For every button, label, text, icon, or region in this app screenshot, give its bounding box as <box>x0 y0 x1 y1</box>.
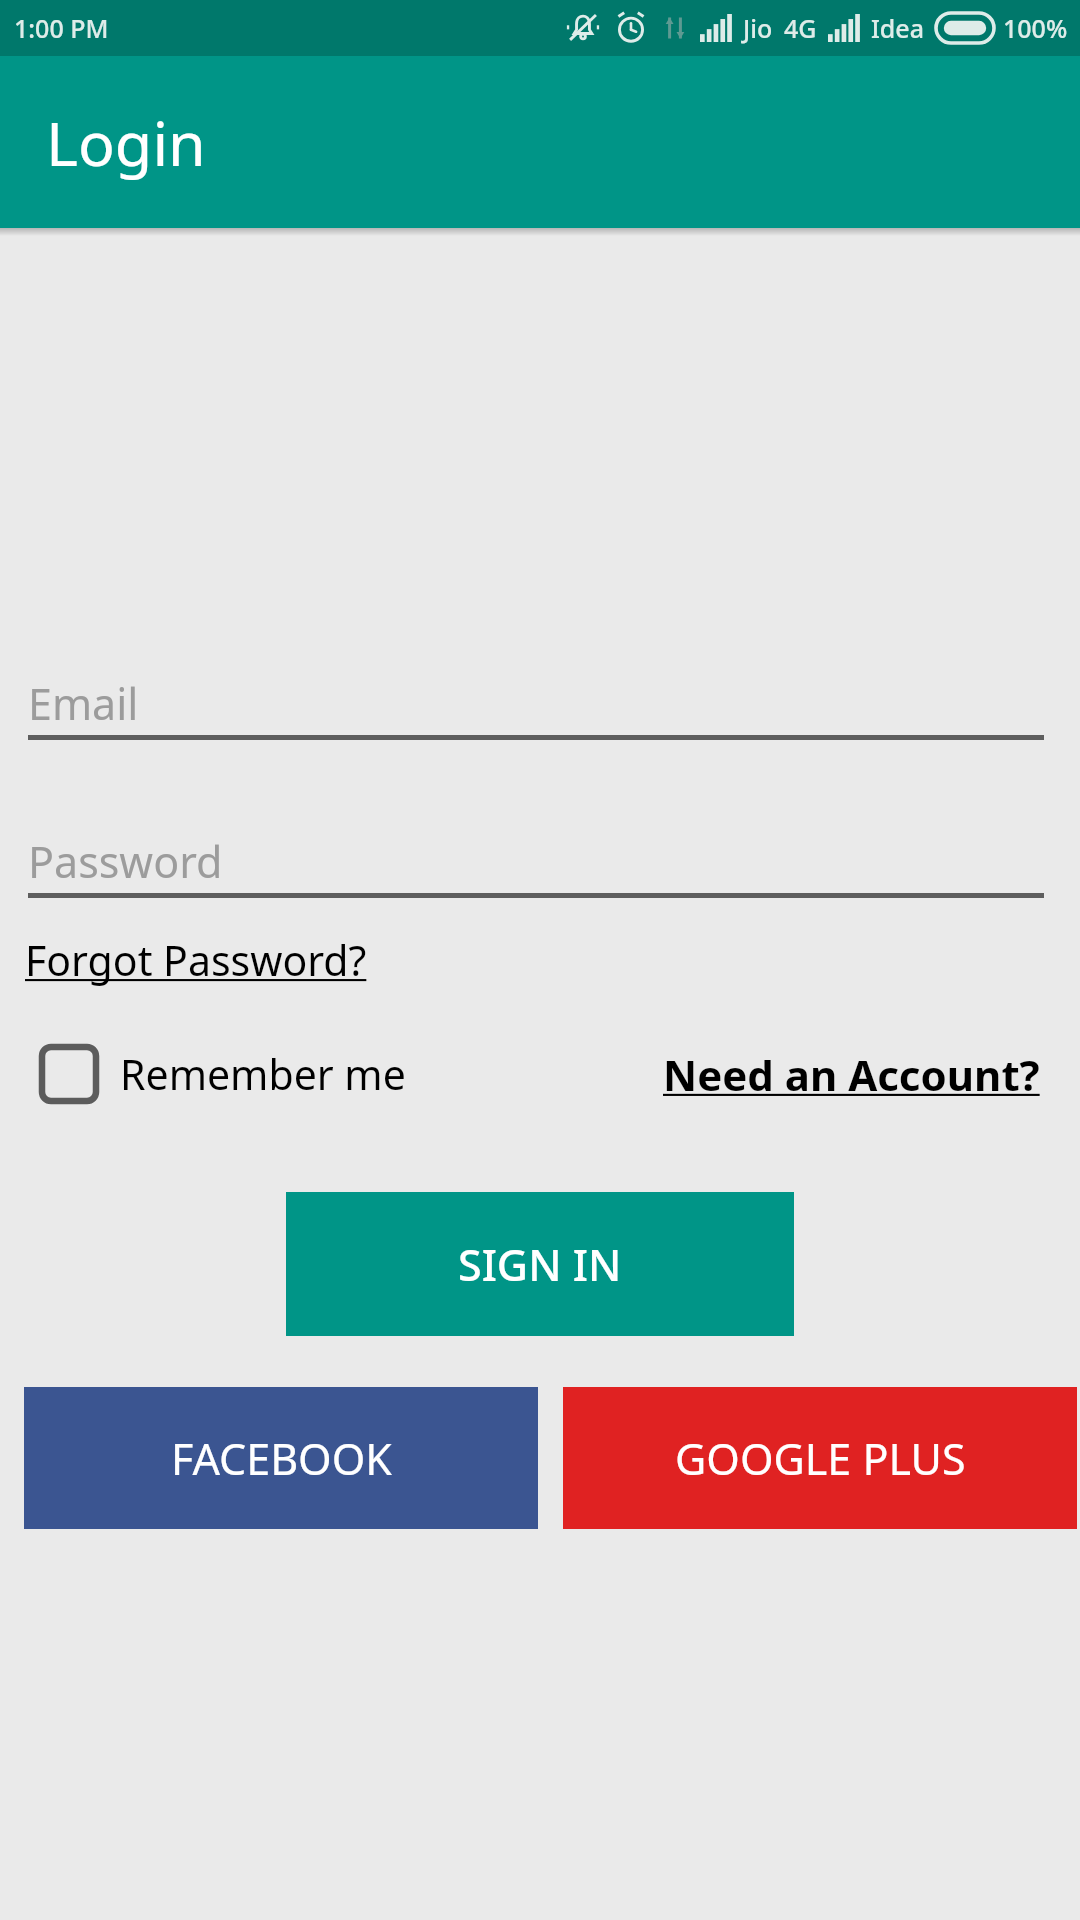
staticText: 100% <box>1003 11 1068 45</box>
staticText: 1:00 PM <box>14 11 109 45</box>
other: Data transfer <box>660 13 690 43</box>
button[interactable]: Password <box>28 826 1044 896</box>
other: Signal strength <box>700 14 734 42</box>
button[interactable]: SIGN IN <box>286 1192 794 1336</box>
button[interactable]: Forgot Password? <box>20 925 372 995</box>
button[interactable]: Need an Account? <box>663 1046 1040 1103</box>
staticText: GOOGLE PLUS <box>675 1429 966 1488</box>
other: Signal strength <box>828 14 862 42</box>
other: Silent mode <box>566 11 600 45</box>
staticText: Forgot Password? <box>25 932 367 988</box>
button[interactable]: Email <box>28 668 1044 738</box>
button[interactable]: FACEBOOK <box>24 1387 538 1529</box>
staticText: Login <box>46 101 206 184</box>
staticText: 4G <box>784 11 817 45</box>
staticText: Need an Account? <box>663 1046 1040 1103</box>
other: Battery 100 percent <box>936 13 994 43</box>
button[interactable]: GOOGLE PLUS <box>563 1387 1077 1529</box>
staticText: FACEBOOK <box>171 1429 392 1488</box>
button[interactable]: Remember me <box>38 1043 406 1105</box>
staticText: SIGN IN <box>458 1235 622 1294</box>
staticText: Remember me <box>120 1046 406 1102</box>
staticText: Idea <box>871 11 925 45</box>
staticText: Email <box>28 674 139 733</box>
staticText: Password <box>28 832 223 891</box>
other: Alarm set <box>614 11 648 45</box>
staticText: Jio <box>743 11 773 45</box>
